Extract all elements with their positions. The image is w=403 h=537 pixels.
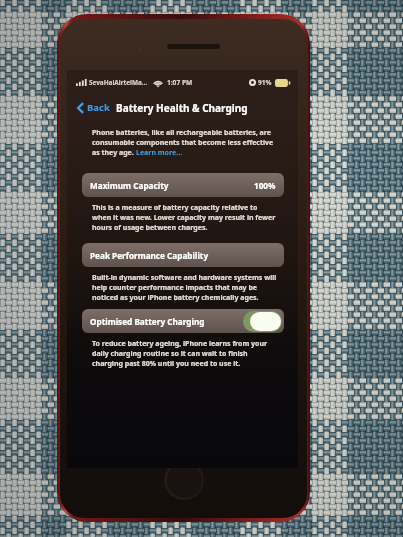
button[interactable]: Back [75, 99, 112, 116]
staticText: help counter performance impacts that ma… [92, 283, 258, 293]
button[interactable]: Peak Performance Capability [82, 243, 284, 267]
button[interactable]: Optimised Battery Charging switch [243, 311, 282, 332]
staticText: Battery Health & Charging [116, 101, 248, 115]
staticText: as they age. [92, 148, 136, 158]
button[interactable]: Optimised Battery Charging [82, 309, 284, 333]
staticText: daily charging routine so it can wait to… [92, 349, 248, 359]
staticText: 1:07 PM [167, 78, 193, 87]
staticText: This is a measure of battery capacity re… [92, 203, 258, 213]
staticText: 100% [254, 180, 276, 191]
staticText: Phone batteries, like all rechargeable b… [92, 128, 271, 138]
staticText: Built-in dynamic software and hardware s… [92, 273, 277, 283]
staticText: To reduce battery ageing, iPhone learns … [92, 339, 268, 349]
staticText: hours of usage between charges. [92, 223, 208, 233]
staticText: noticed as your iPhone battery chemicall… [92, 293, 259, 303]
staticText: consumable components that become less e… [92, 138, 274, 148]
button[interactable]: Home [164, 460, 204, 500]
staticText: Back [87, 101, 110, 114]
staticText: Optimised Battery Charging [90, 316, 205, 327]
button[interactable]: Maximum Capacity [82, 173, 284, 197]
staticText: SevaHaiAirtelMa… [89, 78, 148, 87]
staticText: when it was new. Lower capacity may resu… [92, 213, 276, 223]
staticText: 91% [258, 78, 272, 87]
staticText: charging past 80% until you need to use … [92, 359, 241, 369]
staticText: Maximum Capacity [90, 180, 169, 191]
staticText: Learn more… [136, 148, 183, 158]
staticText: Peak Performance Capability [90, 250, 209, 261]
